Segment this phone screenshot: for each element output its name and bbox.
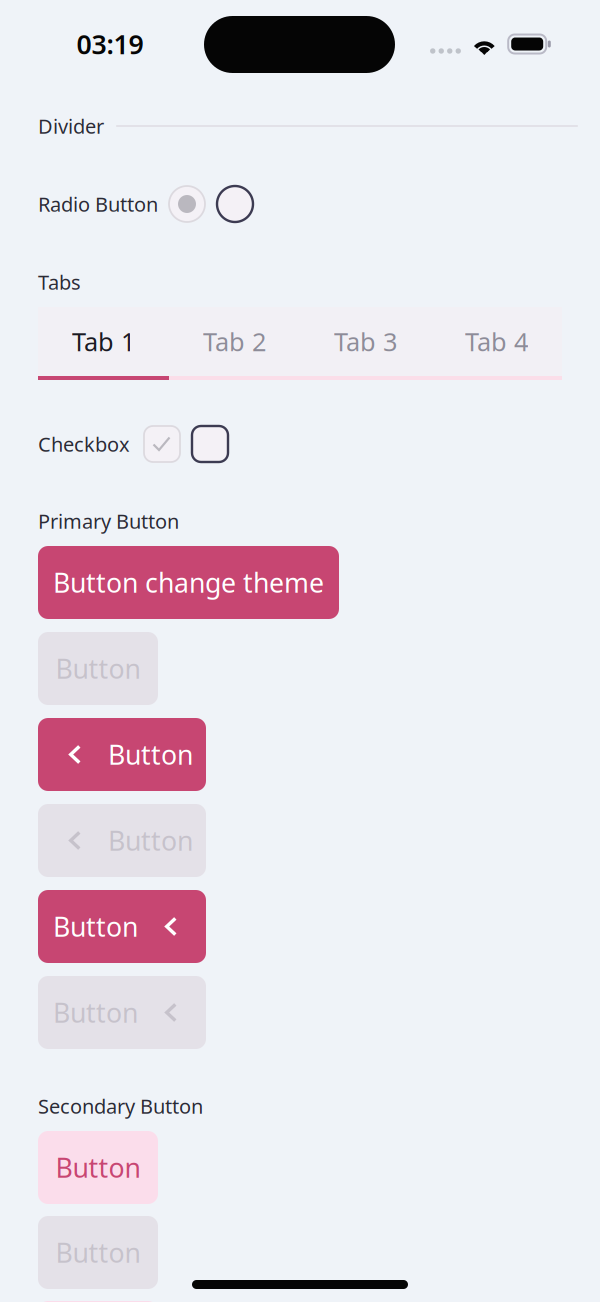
staticText: Button (53, 909, 138, 944)
button[interactable]: Button (38, 976, 206, 1049)
staticText: Tab 1 (72, 325, 135, 358)
staticText: Tab 2 (203, 325, 266, 358)
staticText: Button (108, 823, 193, 858)
button[interactable]: Button (38, 1301, 158, 1302)
button[interactable]: Button (38, 718, 206, 791)
button[interactable]: Button (38, 804, 206, 877)
staticText: Button change theme (53, 565, 324, 600)
staticText: Button (108, 737, 193, 772)
button[interactable]: Tab 3 (300, 307, 431, 376)
button[interactable]: Button (38, 1131, 158, 1204)
button[interactable]: Checkbox, checked, disabled (144, 426, 180, 462)
button[interactable]: Button (38, 632, 158, 705)
button[interactable]: Tab 1 (38, 307, 169, 376)
button[interactable]: Tab 4 (431, 307, 562, 376)
button[interactable]: Button change theme (38, 546, 339, 619)
staticText: Primary Button (38, 508, 179, 534)
staticText: Secondary Button (38, 1093, 203, 1119)
staticText: Radio Button (38, 191, 158, 217)
staticText: Button (55, 1150, 140, 1185)
staticText: Checkbox (38, 431, 130, 457)
button[interactable]: Tab 2 (169, 307, 300, 376)
button[interactable]: Checkbox, unchecked (192, 426, 228, 462)
button[interactable]: Button (38, 890, 206, 963)
staticText: Tabs (38, 269, 81, 295)
staticText: Divider (38, 113, 104, 139)
staticText: 03:19 (76, 26, 143, 62)
staticText: Tab 4 (465, 325, 528, 358)
button[interactable]: Radio button, disabled (169, 186, 205, 222)
staticText: Button (55, 651, 140, 686)
staticText: Button (55, 1235, 140, 1270)
staticText: Button (53, 995, 138, 1030)
staticText: Tab 3 (334, 325, 397, 358)
button[interactable]: Radio button, unselected (217, 186, 253, 222)
button[interactable]: Button (38, 1216, 158, 1289)
